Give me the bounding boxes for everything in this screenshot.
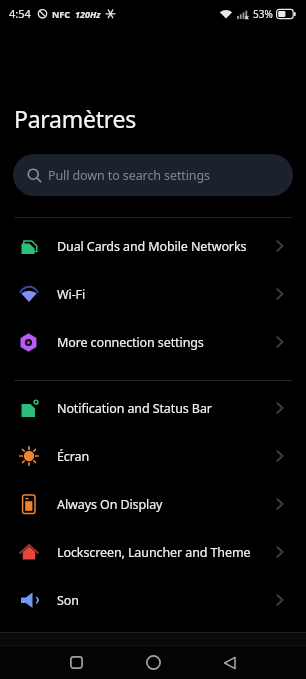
button[interactable]: Wi-Fi [0, 270, 306, 318]
button[interactable]: Écran [0, 432, 306, 480]
staticText: Son [57, 592, 79, 609]
button[interactable]: Always On Display [0, 480, 306, 528]
button[interactable]: Dual Cards and Mobile Networks [0, 222, 306, 270]
button[interactable]: Lockscreen, Launcher and Theme [0, 528, 306, 576]
staticText: Dual Cards and Mobile Networks [57, 238, 247, 255]
button[interactable]: Notification and Status Bar [0, 384, 306, 432]
staticText: Paramètres [14, 103, 137, 134]
button[interactable]: More connection settings [0, 318, 306, 366]
button[interactable] [213, 646, 247, 679]
staticText: Lockscreen, Launcher and Theme [57, 544, 251, 561]
staticText: Écran [57, 448, 90, 465]
button[interactable]: Son [0, 576, 306, 624]
staticText: Notification and Status Bar [57, 400, 212, 417]
button[interactable] [59, 646, 93, 679]
staticText: Wi-Fi [57, 286, 86, 303]
button[interactable]: Pull down to search settings [13, 154, 293, 196]
button[interactable] [136, 646, 170, 679]
staticText: Always On Display [57, 496, 163, 513]
staticText: More connection settings [57, 334, 204, 351]
staticText: NFC [52, 8, 71, 20]
staticText: 53% [253, 7, 273, 21]
staticText: 120Hz [75, 8, 101, 20]
staticText: 4:54 [9, 6, 31, 21]
staticText: Pull down to search settings [48, 167, 210, 184]
